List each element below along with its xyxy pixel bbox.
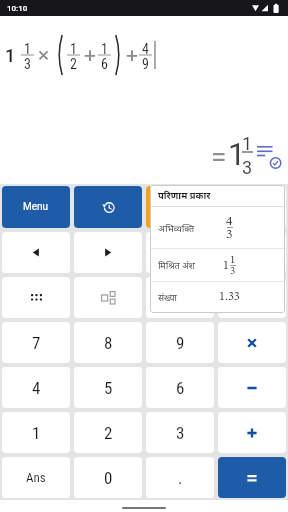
- staticText: 4: [226, 215, 233, 227]
- staticText: 1: [228, 136, 237, 168]
- button[interactable]: .: [146, 457, 214, 498]
- button[interactable]: [146, 186, 214, 228]
- button[interactable]: [218, 412, 286, 453]
- staticText: 1.33: [219, 291, 240, 303]
- staticText: 1: [101, 41, 108, 54]
- staticText: अभिव्यक्ति: [158, 222, 195, 234]
- staticText: +: [126, 43, 138, 68]
- staticText: 9: [176, 333, 185, 353]
- staticText: 3: [176, 423, 185, 443]
- staticText: 1: [5, 45, 16, 65]
- button[interactable]: 4: [2, 367, 70, 408]
- button[interactable]: 2: [74, 412, 142, 453]
- staticText: 7: [32, 333, 41, 353]
- button[interactable]: Ans: [2, 457, 70, 498]
- button[interactable]: 7: [2, 322, 70, 363]
- staticText: परिणाम प्रकार: [158, 189, 211, 202]
- button[interactable]: [146, 232, 214, 273]
- staticText: 2: [70, 56, 77, 69]
- staticText: .: [178, 468, 183, 488]
- button[interactable]: [218, 322, 286, 363]
- button[interactable]: [218, 186, 286, 228]
- staticText: 8: [104, 333, 113, 353]
- staticText: 6: [101, 56, 108, 69]
- button[interactable]: 3: [146, 412, 214, 453]
- staticText: 1: [70, 41, 77, 54]
- button[interactable]: अभिव्यक्ति: [150, 207, 285, 248]
- staticText: =: [211, 140, 226, 173]
- staticText: 3: [24, 56, 31, 69]
- button[interactable]: 6: [146, 367, 214, 408]
- button[interactable]: [146, 277, 214, 318]
- staticText: 1: [24, 41, 31, 54]
- staticText: 1: [242, 133, 253, 147]
- button[interactable]: संख्या: [150, 282, 285, 312]
- staticText: 4: [142, 41, 149, 54]
- button[interactable]: मिश्रित अंश: [150, 249, 285, 281]
- button[interactable]: [74, 186, 142, 228]
- staticText: ×: [38, 43, 50, 68]
- button[interactable]: [218, 367, 286, 408]
- staticText: 3: [242, 157, 253, 171]
- staticText: 5: [104, 378, 113, 398]
- staticText: संख्या: [158, 291, 177, 303]
- staticText: 6: [176, 378, 185, 398]
- staticText: 3: [226, 228, 233, 240]
- button[interactable]: 9: [146, 322, 214, 363]
- button[interactable]: 0: [74, 457, 142, 498]
- staticText: 1: [230, 255, 236, 265]
- staticText: 1: [223, 260, 229, 272]
- button[interactable]: 5: [74, 367, 142, 408]
- button[interactable]: [74, 232, 142, 273]
- staticText: 2: [104, 423, 113, 443]
- staticText: 0: [104, 468, 113, 488]
- staticText: 4: [32, 378, 41, 398]
- staticText: मिश्रित अंश: [158, 259, 195, 271]
- button[interactable]: [218, 232, 286, 273]
- button[interactable]: Menu: [2, 186, 70, 228]
- button[interactable]: 8: [74, 322, 142, 363]
- button[interactable]: [257, 145, 281, 167]
- button[interactable]: [218, 277, 286, 318]
- button[interactable]: [218, 457, 286, 498]
- staticText: 1: [32, 423, 41, 443]
- button[interactable]: 1: [2, 412, 70, 453]
- staticText: Menu: [23, 201, 49, 213]
- staticText: Ans: [26, 470, 46, 485]
- staticText: 9: [142, 56, 149, 69]
- button[interactable]: [2, 277, 70, 318]
- staticText: 3: [230, 266, 236, 276]
- staticText: 10:10: [7, 4, 28, 13]
- button[interactable]: [2, 232, 70, 273]
- staticText: +: [84, 43, 96, 68]
- button[interactable]: [74, 277, 142, 318]
